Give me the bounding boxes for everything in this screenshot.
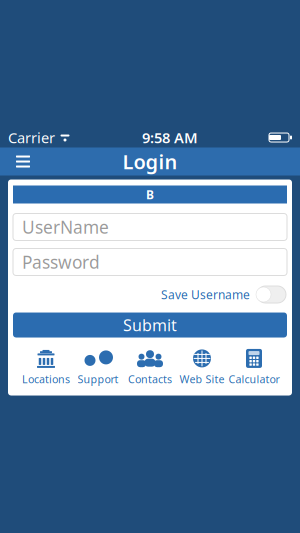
staticText: Submit xyxy=(123,314,177,336)
staticText: Carrier xyxy=(8,128,55,147)
staticText: Calculator xyxy=(228,372,279,386)
staticText: Contacts xyxy=(128,372,172,386)
staticText: Login xyxy=(122,148,177,175)
staticText: Support xyxy=(77,372,118,386)
button[interactable]: Submit xyxy=(13,312,287,337)
staticText: Password xyxy=(22,250,100,273)
staticText: Locations xyxy=(22,372,70,386)
staticText: 9:58 AM xyxy=(142,128,198,147)
button[interactable]: Menu xyxy=(6,144,40,178)
staticText: Web Site xyxy=(179,372,224,386)
button[interactable]: Web Site xyxy=(176,347,228,387)
button[interactable]: Contacts xyxy=(124,347,176,387)
button[interactable]: Locations xyxy=(20,347,72,387)
staticText: B xyxy=(146,186,154,202)
button[interactable]: Calculator xyxy=(228,347,280,387)
button[interactable]: Save Username xyxy=(256,284,287,304)
button[interactable]: Support xyxy=(72,347,124,387)
staticText: UserName xyxy=(22,215,109,238)
staticText: Save Username xyxy=(161,286,250,302)
